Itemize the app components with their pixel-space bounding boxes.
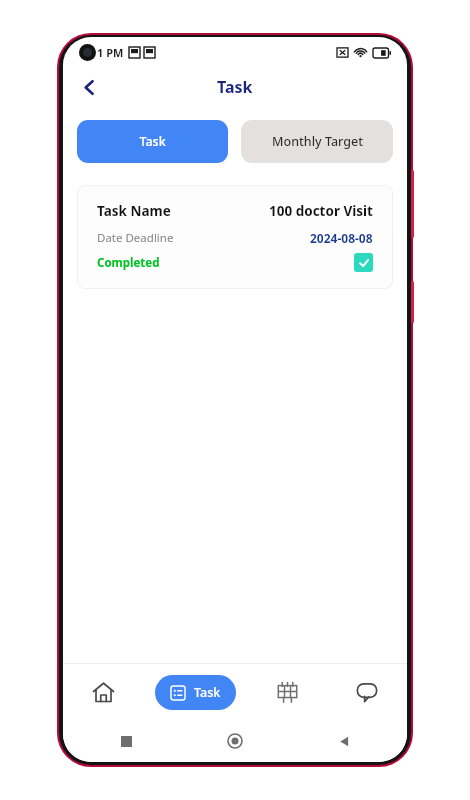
staticText: 2024-08-08 [310, 230, 373, 246]
button[interactable]: Calendar [247, 664, 327, 720]
button[interactable]: Back [69, 67, 109, 107]
button[interactable]: Home [220, 726, 250, 756]
staticText: 1 PM [97, 45, 124, 60]
staticText: Task [217, 76, 253, 98]
button[interactable]: Monthly Target [241, 120, 393, 163]
staticText: Monthly Target [272, 133, 363, 150]
staticText: Task [139, 133, 166, 150]
button[interactable]: Home [63, 664, 143, 720]
staticText: Completed [97, 255, 160, 271]
staticText: Task Name [97, 202, 171, 220]
button[interactable]: Task Name [77, 185, 393, 289]
button[interactable]: Task [155, 675, 236, 710]
staticText: 100 doctor Visit [269, 202, 373, 220]
button[interactable]: Recent apps [111, 726, 141, 756]
button[interactable]: Task [77, 120, 228, 163]
button[interactable]: Back [329, 726, 359, 756]
staticText: Task [194, 684, 221, 701]
button[interactable]: Messages [327, 664, 407, 720]
staticText: Date Deadline [97, 230, 174, 246]
button[interactable]: Completed [354, 253, 373, 272]
